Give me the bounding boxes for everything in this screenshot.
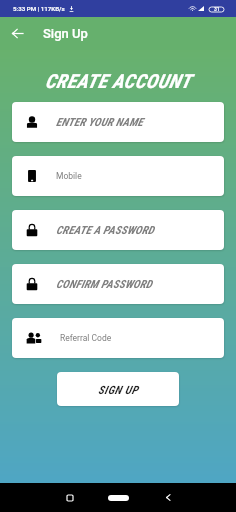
staticText: Referral Code: [60, 333, 112, 343]
staticText: CREATE ACCOUNT: [0, 70, 236, 93]
button[interactable]: SIGN UP: [57, 372, 179, 406]
button[interactable]: Referral Code: [12, 318, 224, 358]
staticText: ENTER YOUR NAME: [56, 116, 143, 129]
staticText: Sign Up: [43, 26, 88, 41]
staticText: Mobile: [56, 171, 82, 181]
button[interactable]: Recent apps: [55, 483, 84, 512]
staticText: 5:33 PM | 117KB/s: [13, 5, 65, 12]
button[interactable]: CONFIRM PASSWORD: [12, 264, 224, 304]
button[interactable]: CREATE A PASSWORD: [12, 210, 224, 250]
staticText: CREATE A PASSWORD: [56, 224, 155, 237]
button[interactable]: Back: [0, 17, 34, 50]
button[interactable]: ENTER YOUR NAME: [12, 102, 224, 142]
button[interactable]: Home: [104, 483, 133, 512]
staticText: SIGN UP: [98, 383, 139, 396]
button[interactable]: Mobile: [12, 156, 224, 196]
button[interactable]: Back: [153, 483, 182, 512]
staticText: 31: [214, 6, 220, 12]
staticText: CONFIRM PASSWORD: [56, 278, 153, 291]
